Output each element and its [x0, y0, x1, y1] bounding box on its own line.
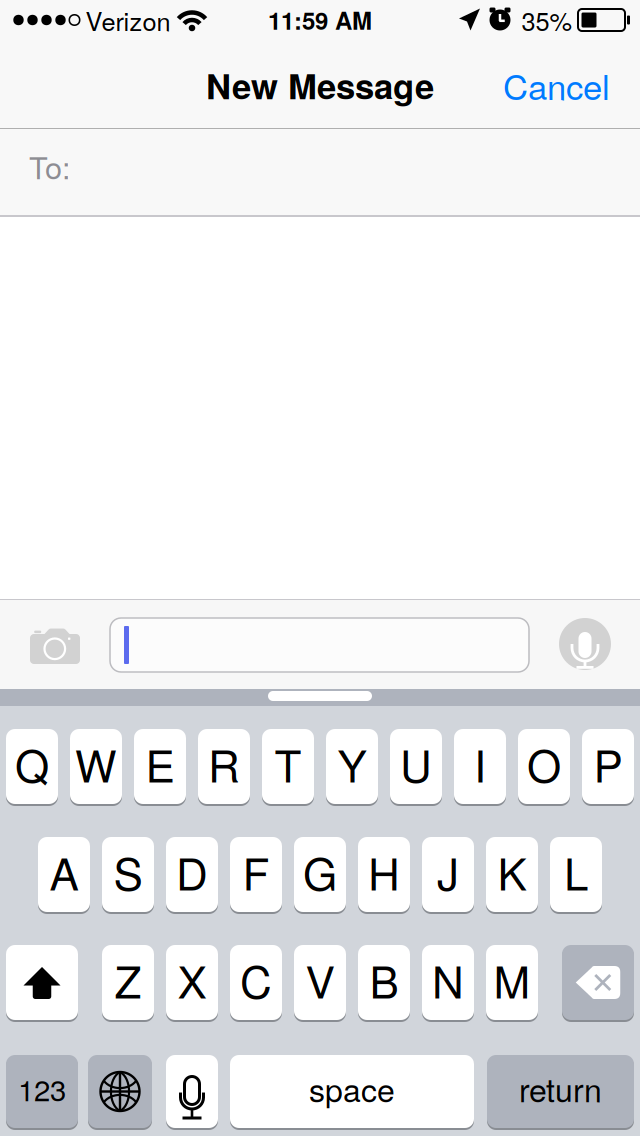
button[interactable]: Delete — [562, 944, 634, 1021]
button[interactable]: W — [70, 728, 122, 805]
button[interactable]: Shift — [6, 944, 78, 1021]
staticText: D — [176, 840, 208, 903]
button[interactable]: L — [550, 836, 602, 913]
staticText: 35% — [521, 2, 572, 38]
button[interactable]: return — [487, 1054, 634, 1129]
staticText: Q — [15, 732, 49, 795]
staticText: U — [400, 732, 432, 795]
staticText: space — [309, 1066, 395, 1111]
button[interactable]: S — [102, 836, 154, 913]
staticText: 11:59 AM — [268, 3, 372, 37]
staticText: B — [369, 948, 398, 1011]
button[interactable]: V — [294, 944, 346, 1021]
button[interactable]: P — [582, 728, 634, 805]
button[interactable]: J — [422, 836, 474, 913]
staticText: V — [305, 948, 334, 1011]
button[interactable]: B — [358, 944, 410, 1021]
staticText: C — [240, 948, 272, 1011]
button[interactable]: U — [390, 728, 442, 805]
staticText: Verizon — [85, 2, 170, 38]
staticText: Y — [337, 732, 366, 795]
button[interactable]: X — [166, 944, 218, 1021]
button[interactable]: O — [518, 728, 570, 805]
button[interactable]: M — [486, 944, 538, 1021]
staticText: M — [493, 948, 530, 1011]
staticText: K — [497, 840, 526, 903]
button[interactable]: I — [454, 728, 506, 805]
button[interactable]: Take photo — [30, 628, 80, 664]
button[interactable]: Q — [6, 728, 58, 805]
staticText: W — [75, 732, 117, 795]
staticText: F — [242, 840, 269, 903]
staticText: X — [177, 948, 206, 1011]
button[interactable]: Z — [102, 944, 154, 1021]
staticText: To: — [29, 144, 71, 188]
button[interactable]: Dictate — [557, 616, 613, 672]
button[interactable]: space — [230, 1054, 474, 1129]
button[interactable]: Y — [326, 728, 378, 805]
staticText: N — [432, 948, 464, 1011]
staticText: Cancel — [503, 60, 610, 110]
staticText: Z — [114, 948, 141, 1011]
button[interactable]: K — [486, 836, 538, 913]
button[interactable]: Next keyboard — [88, 1054, 152, 1129]
button[interactable]: D — [166, 836, 218, 913]
button[interactable]: G — [294, 836, 346, 913]
staticText: L — [564, 840, 588, 903]
staticText: H — [368, 840, 400, 903]
staticText: E — [145, 732, 174, 795]
staticText: G — [303, 840, 337, 903]
staticText: R — [208, 732, 240, 795]
button[interactable]: C — [230, 944, 282, 1021]
staticText: O — [527, 732, 561, 795]
staticText: New Message — [206, 60, 434, 110]
button[interactable]: Cancel — [470, 53, 630, 117]
staticText: S — [113, 840, 142, 903]
button[interactable]: E — [134, 728, 186, 805]
staticText: P — [593, 732, 622, 795]
button[interactable]: N — [422, 944, 474, 1021]
staticText: 123 — [18, 1067, 66, 1109]
staticText: I — [474, 732, 486, 795]
button[interactable]: H — [358, 836, 410, 913]
button[interactable]: F — [230, 836, 282, 913]
staticText: T — [274, 732, 301, 795]
staticText: return — [519, 1066, 602, 1111]
staticText: J — [437, 840, 459, 903]
staticText: A — [49, 840, 78, 903]
button[interactable]: T — [262, 728, 314, 805]
button[interactable]: R — [198, 728, 250, 805]
button[interactable]: Dictate — [166, 1054, 218, 1129]
button[interactable]: A — [38, 836, 90, 913]
button[interactable]: Numbers — [6, 1054, 78, 1129]
